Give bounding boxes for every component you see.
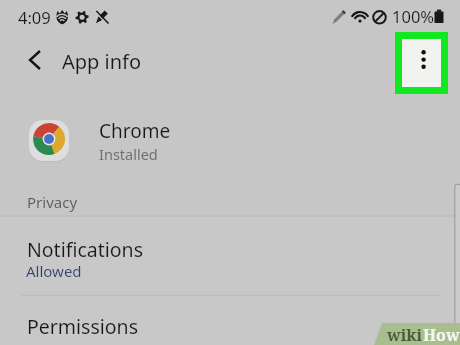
button[interactable]: Notifications [0,218,460,295]
staticText: Allowed [26,261,82,281]
staticText: How [423,324,460,345]
staticText: 4:09 [18,6,51,28]
staticText: wiki [387,324,423,345]
staticText: Privacy [27,192,78,212]
button[interactable]: Chrome [0,104,460,176]
button[interactable]: Navigate up [18,44,52,76]
staticText: Chrome [99,118,171,144]
staticText: Notifications [27,236,143,263]
staticText: 100% [392,5,435,27]
staticText: Permissions [27,313,139,340]
button[interactable]: Permissions [0,297,460,345]
staticText: App info [62,48,142,75]
button[interactable]: More options [395,32,448,94]
staticText: Installed [99,144,158,164]
